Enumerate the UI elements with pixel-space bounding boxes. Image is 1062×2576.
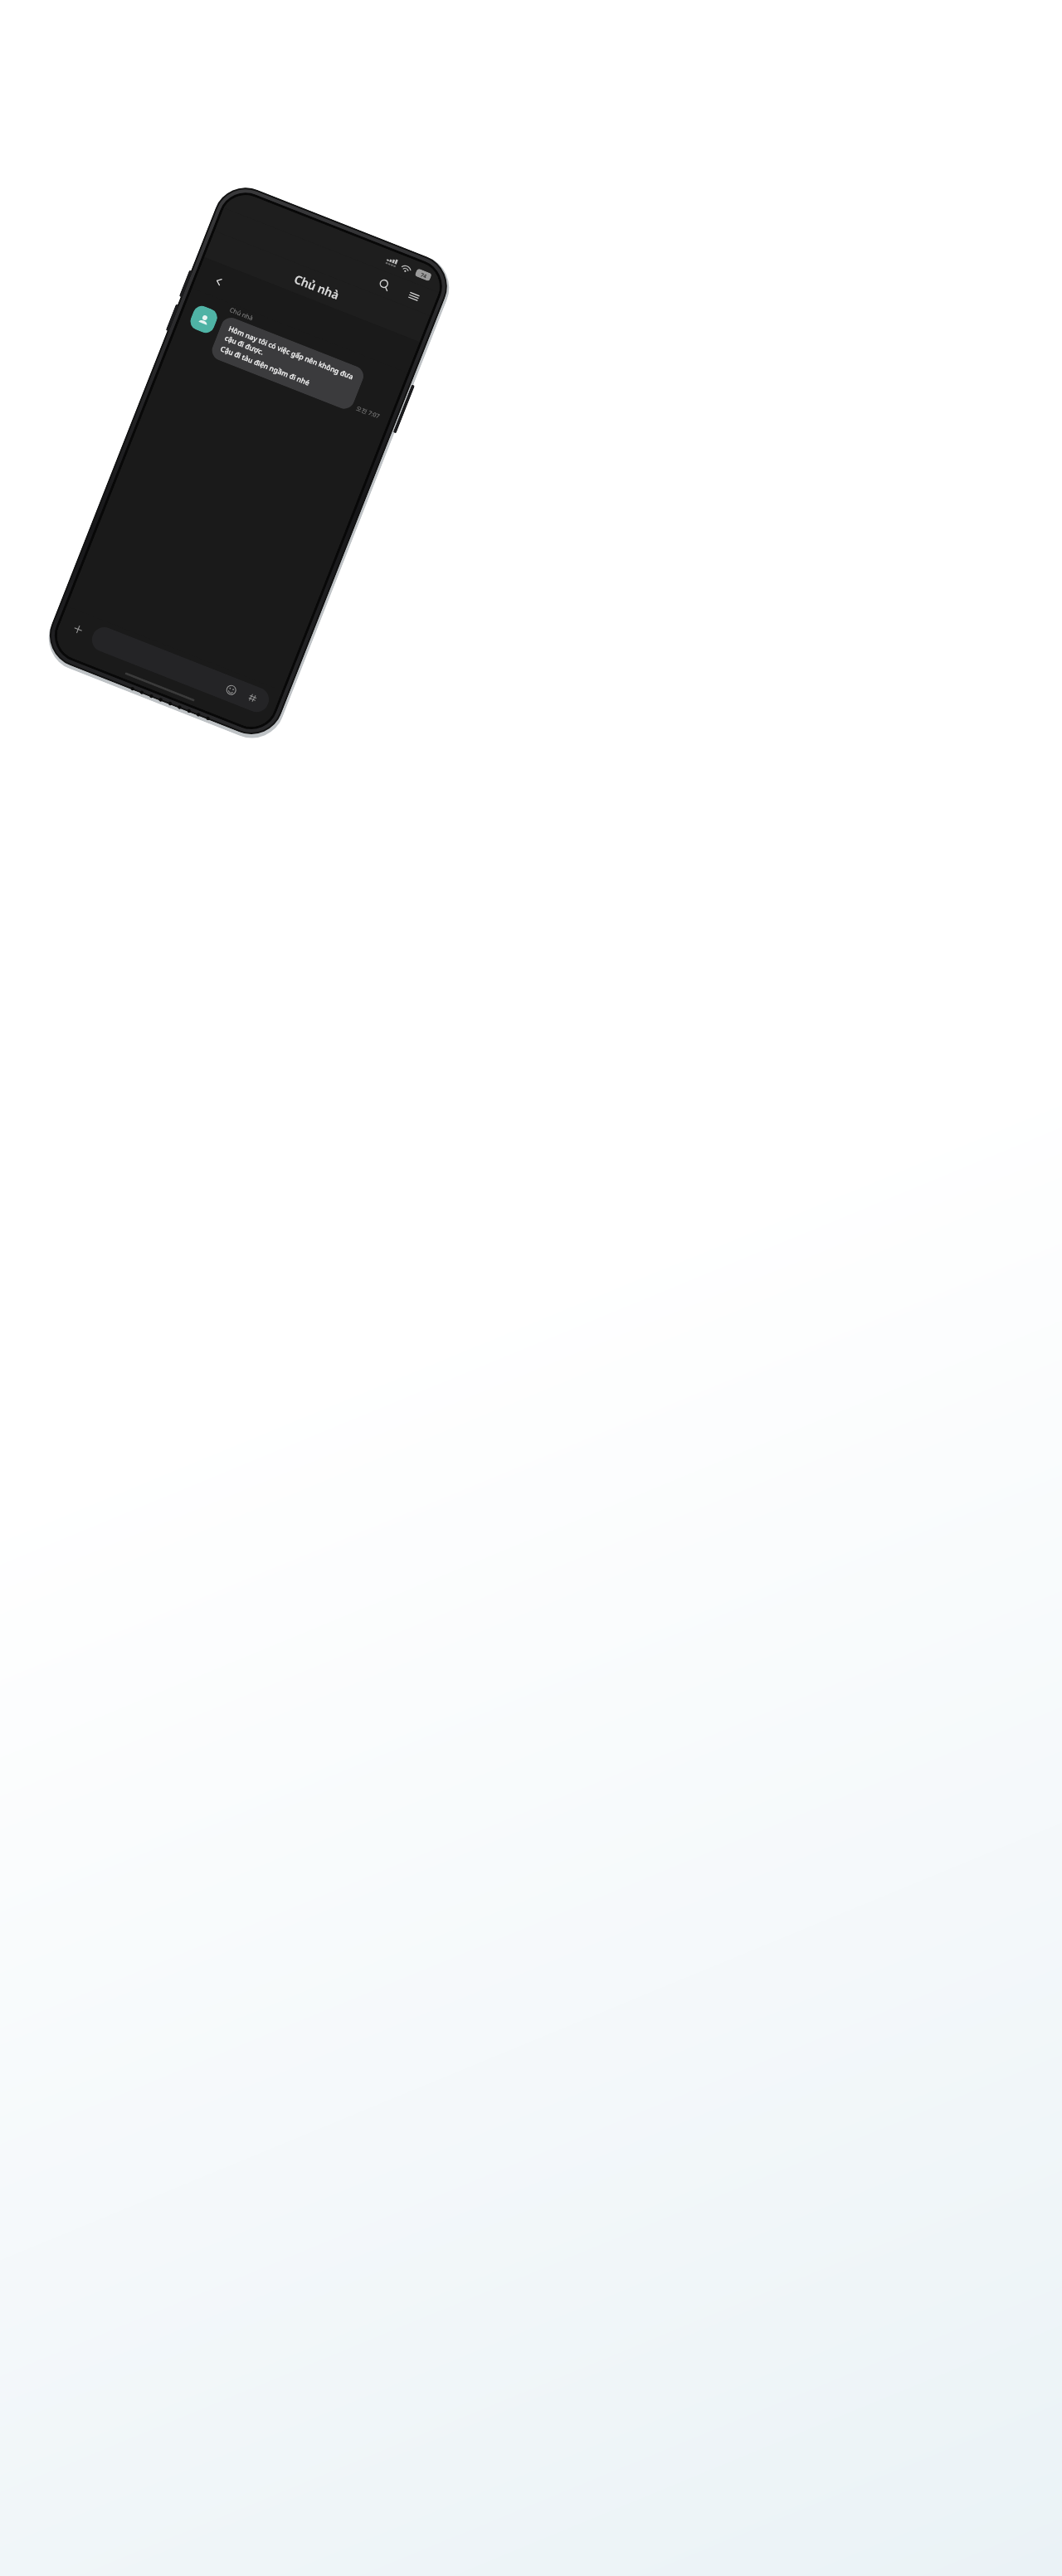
staticText: 74: [419, 271, 428, 280]
button[interactable]: Menu: [400, 282, 428, 310]
button[interactable]: Search: [370, 270, 398, 298]
button[interactable]: Profile picture: [188, 303, 220, 336]
staticText: Hôm nay tôi có việc gấp nên không đưa cậ…: [223, 324, 357, 392]
button[interactable]: Hôm nay tôi có việc gấp nên không đưa cậ…: [209, 315, 367, 412]
button[interactable]: Sticker: [242, 687, 263, 709]
button[interactable]: Back: [203, 265, 235, 297]
staticText: Cậu đi tàu điện ngầm đi nhé: [219, 344, 311, 388]
button[interactable]: Emoji: [220, 679, 242, 700]
staticText: 오전 7:07: [355, 404, 381, 421]
staticText: Chủ nhà: [229, 305, 255, 322]
staticText: Chủ nhà: [292, 271, 342, 303]
button[interactable]: Emoji: [88, 623, 273, 716]
button[interactable]: Add attachment: [64, 615, 92, 643]
